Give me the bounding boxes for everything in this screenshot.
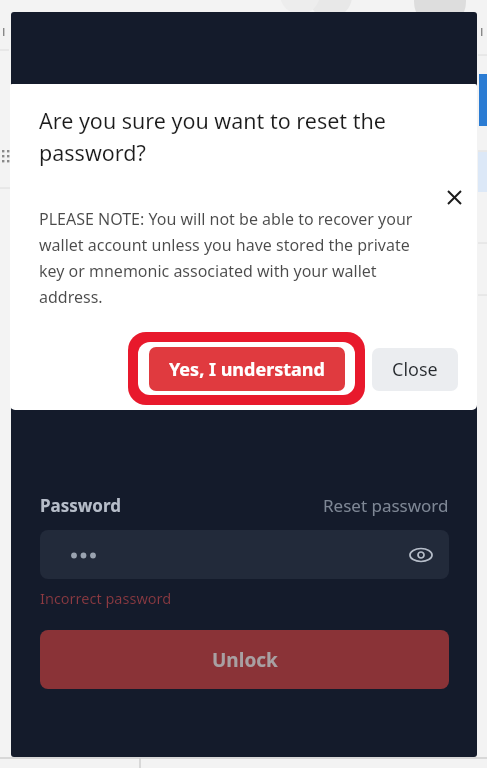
button[interactable]: Close [440,183,468,211]
button[interactable]: Close [372,348,458,391]
button[interactable]: Yes, I understand [149,347,345,391]
button[interactable]: Show password [406,540,436,570]
button[interactable]: Reset password [323,494,449,517]
staticText: Close [392,357,438,382]
staticText: Password [40,494,121,517]
button[interactable]: Unlock [40,630,449,689]
staticText: Reset password [323,494,449,517]
staticText: Incorrect password [40,588,172,608]
staticText: Unlock [212,647,278,673]
staticText: PLEASE NOTE: You will not be able to rec… [39,208,439,308]
staticText: Are you sure you want to reset the passw… [39,106,431,167]
staticText: Yes, I understand [169,357,325,382]
button[interactable]: Show password [40,530,449,579]
